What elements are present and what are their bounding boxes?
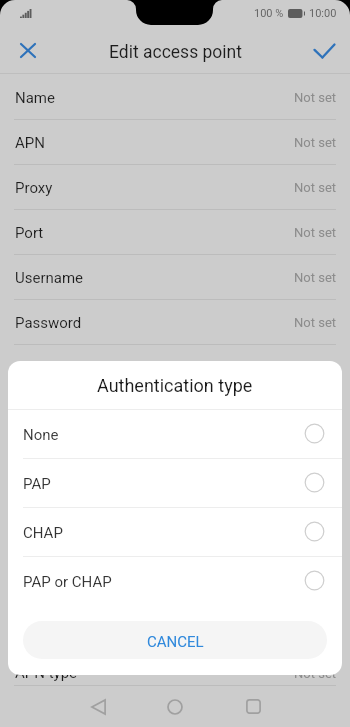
button[interactable]: Authentication type <box>0 615 350 660</box>
staticText: Not set <box>294 585 337 600</box>
button[interactable]: CANCEL <box>23 621 327 659</box>
staticText: MCC <box>15 539 48 557</box>
button[interactable]: Username <box>0 255 350 300</box>
button[interactable]: Back <box>74 686 122 727</box>
staticText: CHAP <box>23 524 63 542</box>
staticText: None <box>23 426 59 444</box>
staticText: MMSC <box>15 404 60 422</box>
staticText: Name <box>15 89 55 107</box>
button[interactable]: CHAP <box>8 508 342 557</box>
staticText: Not set <box>294 630 337 645</box>
staticText: APN type <box>15 664 78 682</box>
staticText: Proxy <box>15 179 53 197</box>
staticText: MMS port <box>15 494 82 512</box>
staticText: PAP <box>23 475 51 493</box>
button[interactable]: PAP <box>8 459 342 508</box>
staticText: Not set <box>294 135 337 150</box>
button[interactable]: MMSC <box>0 390 350 435</box>
button[interactable]: MMS port <box>0 480 350 525</box>
staticText: Not set <box>294 360 337 375</box>
staticText: Not set <box>294 540 337 555</box>
staticText: Not set <box>294 225 337 240</box>
button[interactable]: Name <box>0 75 350 120</box>
staticText: Not set <box>294 270 337 285</box>
button[interactable]: MMS proxy <box>0 435 350 480</box>
staticText: 100 % <box>254 7 284 20</box>
staticText: 10:00 <box>309 7 337 20</box>
staticText: Not set <box>294 666 337 681</box>
button[interactable]: Server <box>0 345 350 390</box>
staticText: Not set <box>294 450 337 465</box>
staticText: Password <box>15 314 82 332</box>
staticText: MMS proxy <box>15 449 91 467</box>
staticText: Not set <box>294 405 337 420</box>
button[interactable]: APN type <box>0 660 350 686</box>
button[interactable]: MCC <box>0 525 350 570</box>
staticText: Not set <box>294 315 337 330</box>
button[interactable]: Cancel <box>13 24 42 75</box>
staticText: APN <box>15 134 45 152</box>
staticText: Authentication type <box>97 375 253 396</box>
staticText: Edit access point <box>109 42 242 63</box>
staticText: Not set <box>294 495 337 510</box>
staticText: Not set <box>294 180 337 195</box>
button[interactable]: MNC <box>0 570 350 615</box>
staticText: MNC <box>15 584 49 602</box>
staticText: CANCEL <box>147 633 204 651</box>
staticText: Server <box>15 359 58 377</box>
button[interactable]: Home <box>151 686 199 727</box>
staticText: Port <box>15 224 44 242</box>
button[interactable]: Password <box>0 300 350 345</box>
button[interactable]: None <box>8 410 342 459</box>
button[interactable]: Port <box>0 210 350 255</box>
staticText: PAP or CHAP <box>23 573 112 591</box>
button[interactable]: PAP or CHAP <box>8 557 342 606</box>
button[interactable]: APN <box>0 120 350 165</box>
staticText: Not set <box>294 90 337 105</box>
button[interactable]: Recents <box>229 686 277 727</box>
button[interactable]: Proxy <box>0 165 350 210</box>
staticText: Username <box>15 269 84 287</box>
button[interactable]: Save <box>310 24 339 75</box>
